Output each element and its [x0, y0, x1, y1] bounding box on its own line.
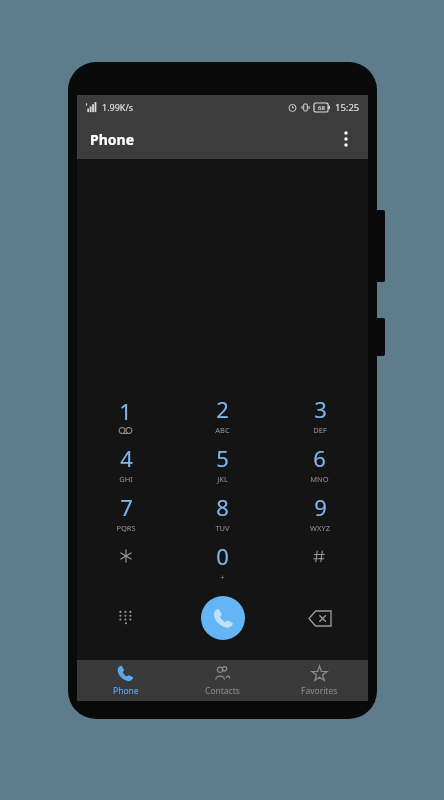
staticText: ABC	[215, 425, 230, 435]
staticText: JKL	[217, 474, 228, 484]
staticText: 9	[314, 492, 327, 522]
staticText: 1.99K/s	[102, 101, 134, 113]
staticText: 68	[318, 104, 325, 112]
staticText: 4	[120, 443, 133, 473]
button[interactable]: 2	[174, 390, 271, 439]
staticText: TUV	[215, 523, 230, 533]
staticText: Contacts	[205, 685, 240, 697]
staticText: 7	[120, 492, 133, 522]
button[interactable]: 6	[271, 439, 368, 488]
button[interactable]	[77, 537, 174, 586]
button[interactable]: 9	[271, 488, 368, 537]
staticText: MNO	[310, 474, 329, 484]
staticText: 8	[216, 492, 229, 522]
staticText: DEF	[313, 425, 327, 435]
staticText: 0	[216, 541, 229, 571]
button[interactable]: Contacts	[174, 660, 271, 701]
button[interactable]: More options	[330, 123, 362, 155]
button[interactable]: 0	[174, 537, 271, 586]
staticText: PQRS	[116, 523, 136, 533]
staticText: 15:25	[335, 101, 360, 114]
staticText: Phone	[113, 685, 139, 697]
staticText: 1	[119, 396, 132, 426]
button[interactable]: Backspace	[271, 592, 368, 644]
staticText: Favorites	[301, 685, 338, 697]
staticText: 2	[216, 394, 229, 424]
staticText: +	[220, 572, 225, 582]
staticText: Phone	[90, 130, 135, 149]
button[interactable]: Phone	[77, 660, 174, 701]
button[interactable]: 3	[271, 390, 368, 439]
button[interactable]: 7	[77, 488, 174, 537]
button[interactable]	[271, 537, 368, 586]
button[interactable]: 1	[77, 390, 174, 439]
button[interactable]: Dialpad	[77, 592, 174, 644]
button[interactable]: Call	[201, 596, 245, 640]
staticText: 6	[313, 443, 326, 473]
staticText: 3	[314, 394, 327, 424]
button[interactable]: 8	[174, 488, 271, 537]
button[interactable]: 5	[174, 439, 271, 488]
staticText: GHI	[119, 474, 133, 484]
staticText: 5	[216, 443, 229, 473]
button[interactable]: 4	[77, 439, 174, 488]
staticText: WXYZ	[310, 523, 330, 533]
button[interactable]: Favorites	[271, 660, 368, 701]
